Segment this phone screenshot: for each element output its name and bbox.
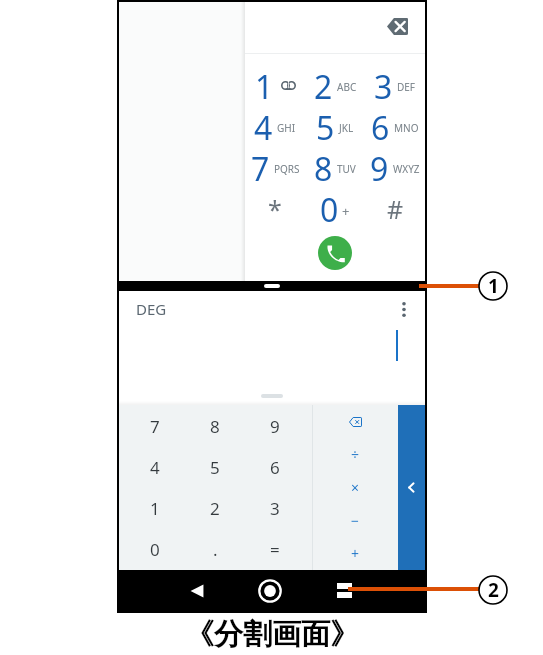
staticText: WXYZ: [393, 162, 420, 176]
staticText: 4: [150, 456, 160, 479]
staticText: 9: [270, 415, 280, 438]
staticText: 8: [314, 147, 333, 188]
staticText: DEF: [397, 80, 416, 94]
button[interactable]: −: [313, 504, 398, 537]
button[interactable]: 7: [125, 405, 185, 447]
staticText: ×: [351, 478, 360, 497]
button[interactable]: *: [245, 188, 305, 229]
button[interactable]: ÷: [313, 438, 398, 471]
button[interactable]: 1: [125, 488, 185, 529]
staticText: +: [342, 202, 350, 220]
staticText: 5: [316, 106, 335, 147]
staticText: #: [387, 192, 404, 226]
staticText: 2: [210, 497, 220, 520]
button[interactable]: More options: [393, 298, 415, 320]
staticText: 6: [270, 456, 280, 479]
staticText: 0: [150, 538, 160, 561]
button[interactable]: 5: [185, 447, 245, 488]
button[interactable]: 1: [245, 65, 305, 106]
button[interactable]: 8: [305, 147, 365, 188]
staticText: 3: [374, 65, 393, 106]
button[interactable]: Delete: [313, 405, 398, 438]
button[interactable]: 9: [245, 405, 305, 447]
staticText: TUV: [337, 162, 356, 176]
button[interactable]: #: [365, 188, 425, 229]
staticText: +: [351, 544, 360, 563]
staticText: =: [270, 538, 280, 561]
staticText: 《分割画面》: [185, 616, 359, 653]
button[interactable]: ×: [313, 471, 398, 504]
button[interactable]: 4: [245, 106, 305, 147]
staticText: 1: [255, 65, 274, 106]
button[interactable]: Call: [318, 236, 352, 270]
button[interactable]: 9: [365, 147, 425, 188]
button[interactable]: +: [313, 537, 398, 570]
button[interactable]: 6: [365, 106, 425, 147]
button[interactable]: 4: [125, 447, 185, 488]
staticText: 3: [270, 497, 280, 520]
staticText: 5: [210, 456, 220, 479]
staticText: PQRS: [274, 162, 300, 176]
staticText: GHI: [277, 121, 296, 135]
button[interactable]: Recent apps: [326, 570, 362, 611]
staticText: 4: [254, 106, 273, 147]
button[interactable]: 5: [305, 106, 365, 147]
button[interactable]: .: [185, 529, 245, 570]
staticText: JKL: [339, 121, 354, 135]
staticText: 8: [210, 415, 220, 438]
button[interactable]: 6: [245, 447, 305, 488]
staticText: 0: [320, 188, 339, 229]
button[interactable]: Show more operations: [398, 405, 425, 570]
staticText: 2: [314, 65, 333, 106]
staticText: 1: [150, 497, 160, 520]
staticText: −: [351, 511, 360, 530]
staticText: 6: [371, 106, 390, 147]
staticText: .: [213, 538, 218, 561]
button[interactable]: Back: [179, 570, 215, 611]
button[interactable]: 0: [125, 529, 185, 570]
other: Delete: [349, 417, 362, 427]
staticText: 9: [370, 147, 389, 188]
staticText: 2: [488, 577, 499, 603]
staticText: ÷: [351, 445, 360, 464]
staticText: ABC: [337, 80, 357, 94]
button[interactable]: Backspace: [383, 15, 411, 37]
button[interactable]: 7: [245, 147, 305, 188]
button[interactable]: 0: [305, 188, 365, 229]
button[interactable]: 3: [365, 65, 425, 106]
button[interactable]: 2: [305, 65, 365, 106]
staticText: DEG: [136, 299, 167, 319]
staticText: 7: [150, 415, 160, 438]
button[interactable]: =: [245, 529, 305, 570]
staticText: *: [268, 192, 282, 226]
button[interactable]: 2: [185, 488, 245, 529]
button[interactable]: 8: [185, 405, 245, 447]
staticText: 1: [488, 273, 499, 299]
button[interactable]: 3: [245, 488, 305, 529]
staticText: 7: [251, 147, 270, 188]
button[interactable]: Home: [252, 570, 288, 611]
staticText: MNO: [394, 121, 419, 135]
